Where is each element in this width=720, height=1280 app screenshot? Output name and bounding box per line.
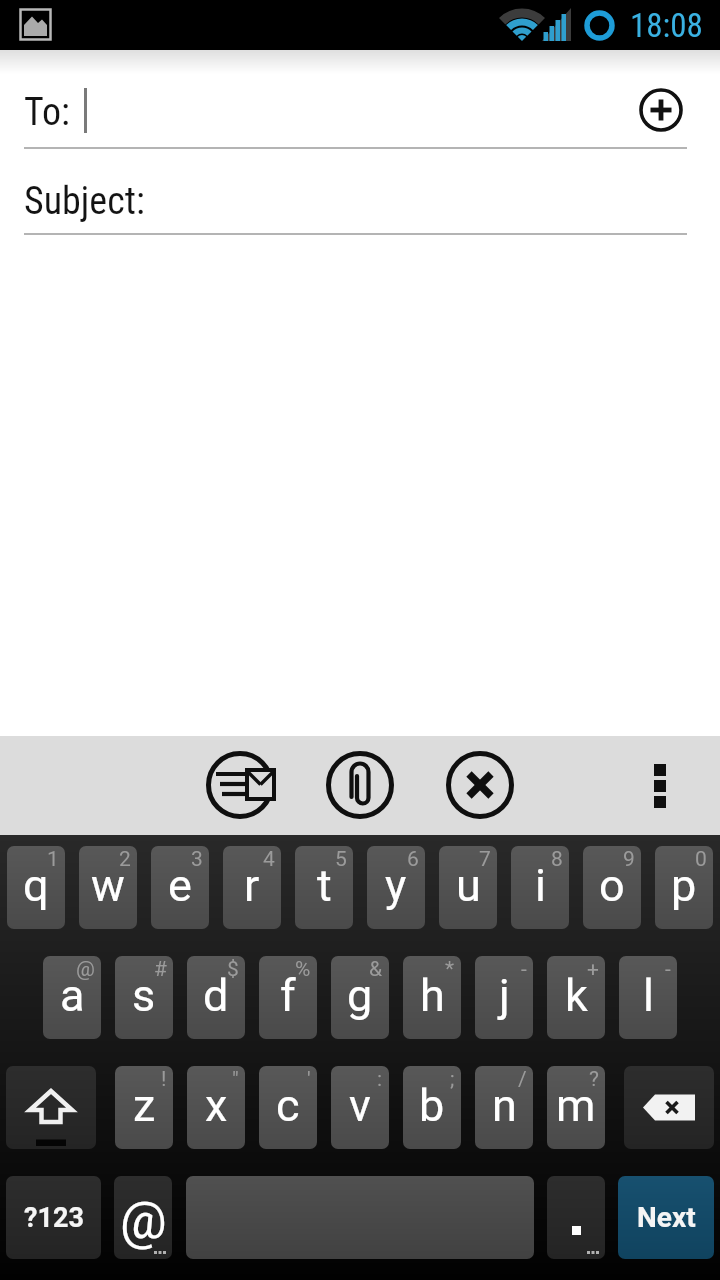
button[interactable]: k [547, 956, 605, 1039]
staticText: m [556, 1079, 596, 1132]
staticText: c [276, 1079, 300, 1132]
staticText: l [643, 969, 654, 1022]
staticText: / [518, 1067, 527, 1092]
staticText: To: [24, 90, 70, 135]
button[interactable] [200, 745, 280, 825]
button[interactable]: v [331, 1066, 389, 1149]
button[interactable] [186, 1176, 534, 1259]
staticText: 6 [407, 847, 419, 872]
staticText: r [244, 859, 260, 912]
staticText: s [132, 969, 156, 1022]
staticText: d [203, 969, 229, 1022]
button[interactable] [547, 1176, 605, 1259]
staticText: 4 [263, 847, 275, 872]
staticText: ; [450, 1067, 455, 1092]
button[interactable] [636, 750, 684, 820]
button[interactable] [440, 745, 520, 825]
button[interactable] [638, 87, 684, 133]
staticText: q [23, 859, 49, 912]
button[interactable]: ?123 [6, 1176, 101, 1259]
staticText: z [133, 1079, 156, 1132]
button[interactable] [624, 1066, 714, 1149]
staticText: 9 [623, 847, 635, 872]
staticText: t [317, 859, 332, 912]
staticText: u [456, 859, 481, 912]
button[interactable]: e [151, 846, 209, 929]
button[interactable]: To: [0, 50, 720, 147]
staticText: $ [227, 957, 239, 982]
staticText: Subject: [24, 179, 145, 224]
staticText: @ [76, 957, 95, 982]
button[interactable] [6, 1066, 96, 1149]
staticText: ' [307, 1067, 311, 1092]
staticText: b [419, 1079, 445, 1132]
staticText: h [420, 969, 445, 1022]
button[interactable]: r [223, 846, 281, 929]
staticText: * [445, 957, 455, 982]
staticText: # [154, 957, 167, 982]
button[interactable]: u [439, 846, 497, 929]
staticText: j [499, 969, 510, 1022]
button[interactable]: g [331, 956, 389, 1039]
staticText: % [295, 957, 311, 982]
staticText: ?123 [24, 1202, 84, 1234]
staticText: 2 [119, 847, 131, 872]
button[interactable]: Subject: [0, 149, 720, 233]
staticText: i [535, 859, 546, 912]
button[interactable]: m [547, 1066, 605, 1149]
staticText: " [232, 1067, 239, 1092]
button[interactable]: z [115, 1066, 173, 1149]
button[interactable]: w [79, 846, 137, 929]
button[interactable]: h [403, 956, 461, 1039]
button[interactable]: t [295, 846, 353, 929]
staticText: f [280, 969, 296, 1022]
staticText: w [91, 859, 125, 912]
button[interactable]: o [583, 846, 641, 929]
staticText: 3 [191, 847, 203, 872]
button[interactable]: s [115, 956, 173, 1039]
button[interactable] [320, 745, 400, 825]
staticText: - [665, 957, 671, 982]
button[interactable]: l [619, 956, 677, 1039]
staticText: ? [589, 1067, 599, 1092]
button[interactable]: j [475, 956, 533, 1039]
staticText: 18:08 [630, 6, 703, 45]
staticText: a [60, 969, 85, 1022]
staticText: x [205, 1079, 228, 1132]
button[interactable]: q [7, 846, 65, 929]
button[interactable]: y [367, 846, 425, 929]
staticText: p [671, 859, 697, 912]
button[interactable]: a [43, 956, 101, 1039]
staticText: 0 [695, 847, 707, 872]
staticText: : [377, 1067, 383, 1092]
button[interactable]: c [259, 1066, 317, 1149]
staticText: ! [161, 1067, 167, 1092]
staticText: y [385, 859, 407, 912]
button[interactable]: b [403, 1066, 461, 1149]
staticText: v [349, 1079, 371, 1132]
button[interactable]: p [655, 846, 713, 929]
staticText: e [168, 859, 192, 912]
staticText: n [492, 1079, 517, 1132]
staticText: @ [120, 1190, 167, 1251]
staticText: g [347, 969, 373, 1022]
staticText: - [521, 957, 527, 982]
staticText: 8 [551, 847, 563, 872]
staticText: Next [637, 1201, 696, 1234]
button[interactable]: @ [114, 1176, 172, 1259]
staticText: k [565, 969, 588, 1022]
button[interactable]: d [187, 956, 245, 1039]
staticText: 7 [479, 847, 491, 872]
button[interactable]: x [187, 1066, 245, 1149]
staticText: o [599, 859, 625, 912]
button[interactable]: n [475, 1066, 533, 1149]
button[interactable]: i [511, 846, 569, 929]
staticText: 1 [47, 847, 59, 872]
staticText: 5 [335, 847, 347, 872]
button[interactable]: Next [618, 1176, 714, 1259]
button[interactable]: f [259, 956, 317, 1039]
staticText: & [369, 957, 383, 982]
staticText: + [587, 957, 599, 982]
